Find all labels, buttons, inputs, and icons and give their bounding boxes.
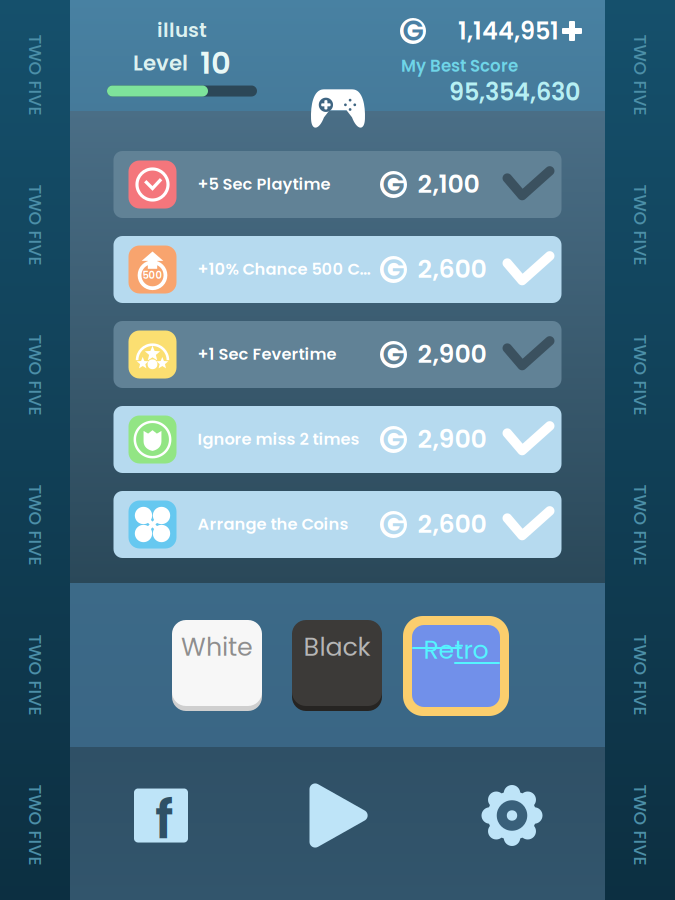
button[interactable]: +1 Sec Fevertime xyxy=(113,321,561,388)
staticText: My Best Score xyxy=(401,54,518,78)
staticText: TWO FIVE xyxy=(0,63,75,87)
staticText: G xyxy=(382,504,404,544)
staticText: G xyxy=(382,164,404,204)
staticText: 10 xyxy=(200,41,231,84)
staticText: 500 xyxy=(142,268,162,282)
button[interactable]: Play xyxy=(298,775,378,855)
staticText: TWO FIVE xyxy=(0,813,75,837)
button[interactable]: +5 Sec Playtime xyxy=(113,151,561,218)
staticText: TWO FIVE xyxy=(0,363,75,387)
staticText: +5 Sec Playtime xyxy=(197,173,330,195)
staticText: Level xyxy=(133,48,188,78)
staticText: 2,900 xyxy=(417,336,486,372)
staticText: Ignore miss 2 times xyxy=(197,428,359,450)
staticText: 2,600 xyxy=(417,506,486,542)
staticText: 2,100 xyxy=(417,166,479,202)
staticText: TWO FIVE xyxy=(599,213,675,237)
button[interactable]: Facebook xyxy=(121,775,201,855)
staticText: +1 Sec Fevertime xyxy=(197,343,336,365)
button[interactable]: Settings xyxy=(472,775,552,855)
staticText: TWO FIVE xyxy=(599,63,675,87)
staticText: White xyxy=(181,629,253,665)
staticText: G xyxy=(402,11,423,50)
staticText: Black xyxy=(303,629,370,665)
staticText: G xyxy=(382,249,404,289)
staticText: Arrange the Coins xyxy=(197,513,348,535)
button[interactable]: Ignore miss 2 times xyxy=(113,406,561,473)
staticText: TWO FIVE xyxy=(599,363,675,387)
staticText: 95,354,630 xyxy=(449,75,581,109)
staticText: illust xyxy=(157,16,207,44)
staticText: 2,600 xyxy=(417,251,486,287)
staticText: Retro xyxy=(423,632,488,668)
staticText: 1,144,951 xyxy=(458,14,559,48)
staticText: G xyxy=(382,419,404,459)
staticText: TWO FIVE xyxy=(0,213,75,237)
staticText: TWO FIVE xyxy=(599,813,675,837)
staticText: TWO FIVE xyxy=(599,513,675,537)
button[interactable]: Black xyxy=(292,617,382,709)
staticText: 2,900 xyxy=(417,421,486,457)
button[interactable]: Arrange the Coins xyxy=(113,491,561,558)
staticText: G xyxy=(382,334,404,374)
staticText: +10% Chance 500 Coin xyxy=(197,258,373,280)
staticText: TWO FIVE xyxy=(0,513,75,537)
button[interactable]: White xyxy=(172,617,262,709)
staticText: TWO FIVE xyxy=(0,663,75,687)
staticText: f xyxy=(155,782,173,857)
staticText: TWO FIVE xyxy=(599,663,675,687)
button[interactable]: Retro xyxy=(403,616,509,716)
button[interactable]: 500 xyxy=(113,236,561,303)
